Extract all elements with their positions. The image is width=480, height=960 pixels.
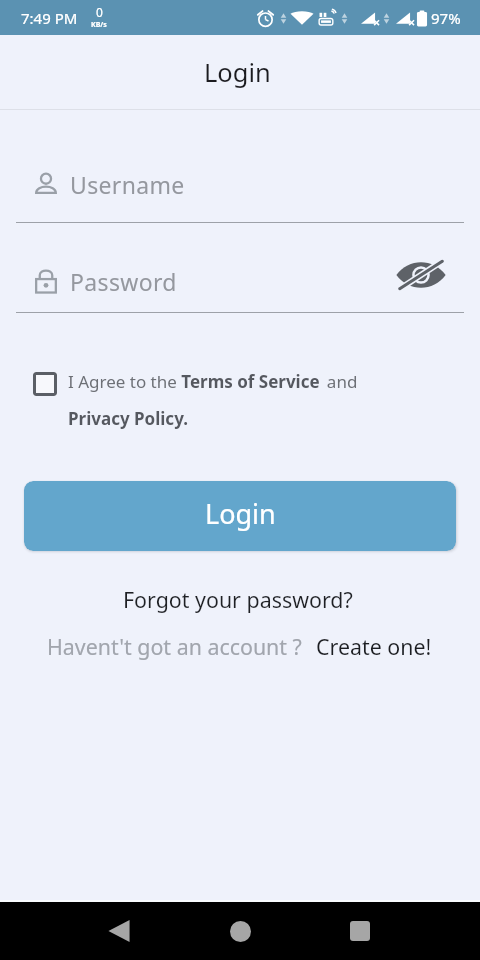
staticText: Forgot your password? — [123, 585, 353, 614]
staticText: Password — [70, 266, 177, 297]
staticText: Havent't got an account ? — [47, 632, 302, 661]
staticText: 7:49 PM — [21, 8, 78, 28]
staticText: KB/s — [91, 20, 107, 30]
button[interactable]: Back — [80, 902, 160, 960]
staticText: 97% — [431, 8, 461, 28]
button[interactable]: Home — [200, 902, 280, 960]
button[interactable]: Forgot your password? — [115, 581, 361, 618]
staticText: Login — [204, 55, 271, 90]
button[interactable]: Show password — [391, 251, 451, 299]
staticText: Login — [205, 495, 276, 532]
staticText: 0 — [96, 4, 103, 20]
staticText: Create one! — [316, 632, 432, 661]
staticText: I Agree to the Terms of Service and — [68, 370, 358, 393]
staticText: Privacy Policy. — [68, 407, 188, 430]
button[interactable]: Agree checkbox — [33, 372, 57, 396]
button[interactable]: Login — [24, 481, 456, 551]
button[interactable]: Recents — [320, 902, 400, 960]
staticText: Username — [70, 169, 185, 200]
button[interactable]: Create one! — [314, 630, 434, 663]
